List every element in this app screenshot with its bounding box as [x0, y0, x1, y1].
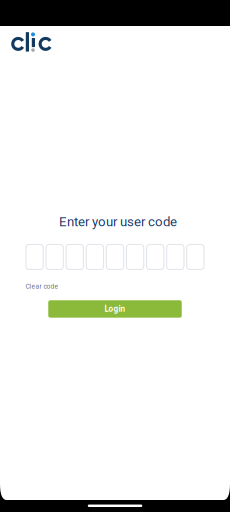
staticText: Enter your user code	[59, 214, 177, 229]
button[interactable]: Clear code	[25, 282, 58, 290]
staticText: Login	[104, 304, 125, 314]
staticText: Clear code	[25, 282, 58, 290]
button[interactable]: Login	[48, 300, 182, 318]
